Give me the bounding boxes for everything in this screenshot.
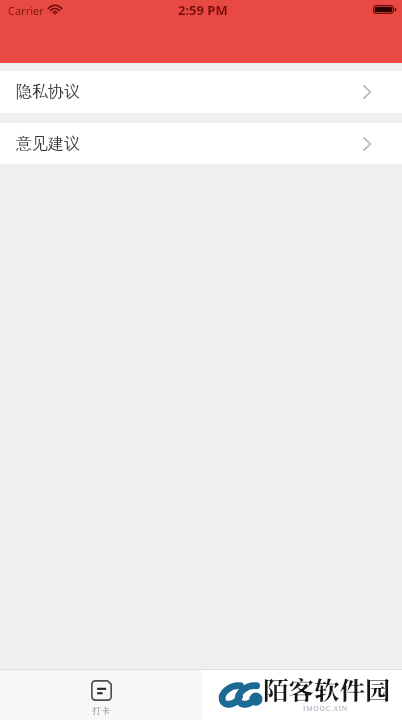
staticText: 陌客软件园 — [263, 671, 391, 708]
staticText: 打卡 — [92, 705, 110, 716]
other: Wi-Fi signal — [49, 4, 61, 14]
staticText: 意见建议 — [16, 134, 80, 154]
other: Battery — [373, 5, 397, 14]
staticText: 隐私协议 — [16, 82, 80, 102]
button[interactable]: 意见建议 — [0, 123, 402, 164]
staticText: IMOOC.XIN — [303, 704, 348, 714]
staticText: 2:59 PM — [178, 1, 228, 19]
button[interactable]: 打卡 — [76, 670, 126, 720]
staticText: Carrier — [8, 3, 44, 18]
button[interactable]: 隐私协议 — [0, 71, 402, 113]
